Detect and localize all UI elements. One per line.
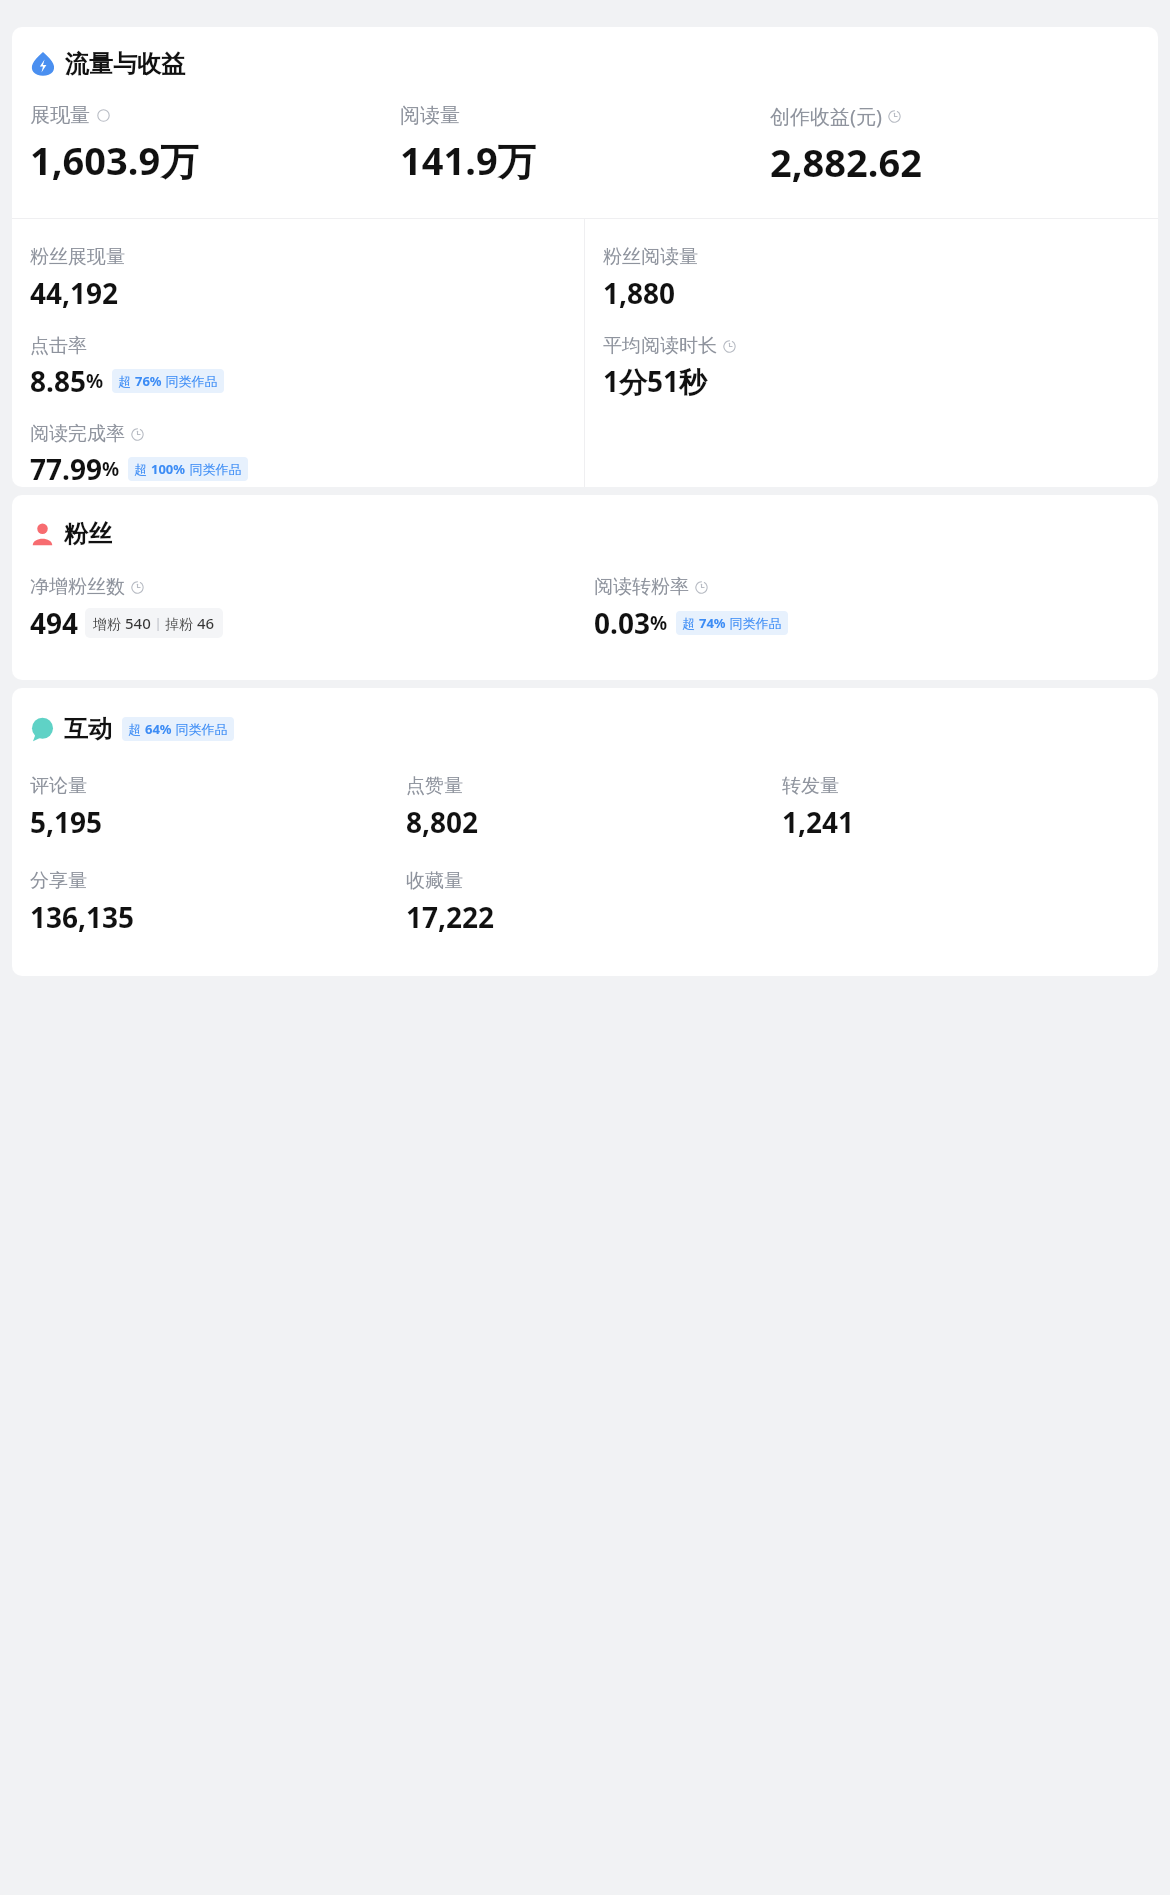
staticText: 净增粉丝数 bbox=[30, 575, 125, 599]
staticText: 同类作品 bbox=[162, 372, 218, 390]
staticText: 点击率 bbox=[30, 334, 87, 358]
button[interactable]: 点赞量 bbox=[406, 774, 782, 841]
button[interactable]: 流量与收益 bbox=[30, 49, 185, 79]
staticText: 74% bbox=[699, 614, 726, 632]
staticText: % bbox=[86, 368, 104, 394]
staticText: 1分51秒 bbox=[603, 362, 708, 400]
staticText: 超 bbox=[682, 614, 699, 632]
staticText: 阅读量 bbox=[400, 103, 460, 128]
staticText: 粉丝 bbox=[64, 519, 112, 549]
staticText: 1,241 bbox=[782, 803, 855, 841]
staticText: 17,222 bbox=[406, 898, 495, 936]
staticText: 粉丝阅读量 bbox=[603, 245, 698, 269]
staticText: % bbox=[650, 610, 668, 636]
other: 时间说明 bbox=[695, 581, 708, 594]
staticText: 转发量 bbox=[782, 774, 839, 798]
staticText: 同类作品 bbox=[726, 614, 782, 632]
staticText: 流量与收益 bbox=[65, 49, 185, 79]
button[interactable]: 分享量 bbox=[30, 869, 406, 936]
staticText: 8,802 bbox=[406, 803, 479, 841]
button[interactable]: 转发量 bbox=[782, 774, 1158, 841]
button[interactable]: 粉丝 bbox=[30, 519, 112, 549]
button[interactable]: 增粉 bbox=[93, 613, 215, 633]
staticText: 点赞量 bbox=[406, 774, 463, 798]
staticText: 同类作品 bbox=[186, 460, 242, 478]
staticText: 44,192 bbox=[30, 274, 119, 312]
staticText: 5,195 bbox=[30, 803, 103, 841]
staticText: 平均阅读时长 bbox=[603, 334, 717, 358]
staticText: 收藏量 bbox=[406, 869, 463, 893]
staticText: | bbox=[151, 614, 165, 632]
staticText: 76% bbox=[135, 372, 162, 390]
staticText: 64% bbox=[145, 720, 172, 738]
staticText: 超 bbox=[128, 720, 145, 738]
staticText: 掉粉 bbox=[165, 614, 197, 633]
other: 时间说明 bbox=[131, 428, 144, 441]
staticText: 创作收益(元) bbox=[770, 103, 882, 130]
staticText: 8.85 bbox=[30, 362, 86, 400]
button[interactable]: 收藏量 bbox=[406, 869, 782, 936]
staticText: 分享量 bbox=[30, 869, 87, 893]
staticText: 互动 bbox=[64, 714, 112, 744]
staticText: 阅读完成率 bbox=[30, 422, 125, 446]
staticText: 77.99 bbox=[30, 450, 102, 487]
button[interactable]: 超 bbox=[128, 720, 228, 738]
staticText: 同类作品 bbox=[172, 720, 228, 738]
staticText: % bbox=[102, 456, 120, 482]
staticText: 540 bbox=[125, 613, 151, 633]
staticText: 超 bbox=[118, 372, 135, 390]
button[interactable]: 评论量 bbox=[30, 774, 406, 841]
other: 说明 bbox=[97, 109, 110, 122]
other: 时间说明 bbox=[888, 110, 901, 123]
staticText: 136,135 bbox=[30, 898, 135, 936]
staticText: 494 bbox=[30, 604, 79, 642]
staticText: 阅读转粉率 bbox=[594, 575, 689, 599]
button[interactable]: 互动 bbox=[30, 714, 234, 744]
staticText: 2,882.62 bbox=[770, 136, 922, 188]
staticText: 展现量 bbox=[30, 103, 90, 128]
button[interactable]: 超 bbox=[682, 614, 782, 632]
staticText: 粉丝展现量 bbox=[30, 245, 125, 269]
staticText: 评论量 bbox=[30, 774, 87, 798]
other: 时间说明 bbox=[723, 340, 736, 353]
button[interactable]: 超 bbox=[134, 460, 242, 478]
staticText: 超 bbox=[134, 460, 151, 478]
button[interactable]: 超 bbox=[118, 372, 218, 390]
other: 时间说明 bbox=[131, 581, 144, 594]
staticText: 1,880 bbox=[603, 274, 676, 312]
staticText: 增粉 bbox=[93, 614, 125, 633]
staticText: 1,603.9万 bbox=[30, 134, 199, 186]
staticText: 46 bbox=[197, 613, 215, 633]
staticText: 141.9万 bbox=[400, 134, 536, 186]
staticText: 0.03 bbox=[594, 604, 650, 642]
staticText: 100% bbox=[151, 460, 186, 478]
